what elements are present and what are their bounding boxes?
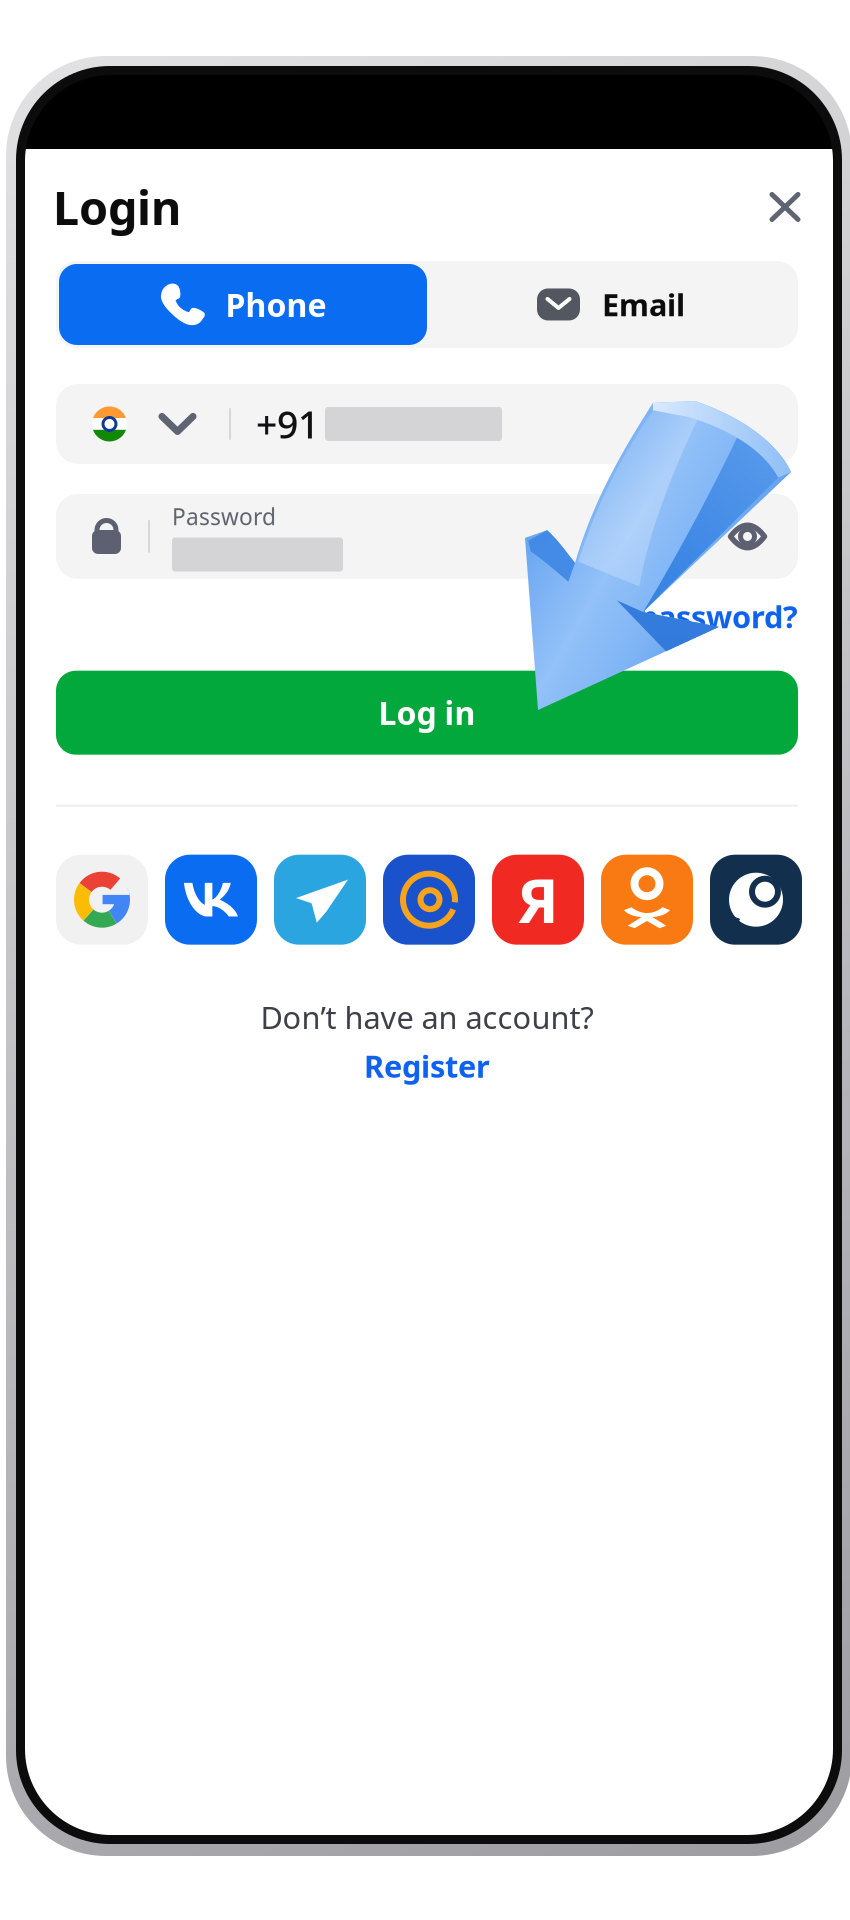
staticText: +91 [256,399,319,449]
button[interactable]: Continue with Steam [710,855,802,945]
staticText: Don’t have an account? [260,997,593,1037]
staticText: Password [172,501,276,531]
staticText: Log in [378,691,475,734]
staticText: Я [517,859,559,940]
staticText: Phone [225,283,326,326]
button[interactable]: Log in [56,671,798,755]
button[interactable]: Continue with Telegram [274,855,366,945]
button[interactable]: Email [427,264,795,345]
button[interactable]: Register [364,1045,490,1086]
button[interactable]: Continue with VK [165,855,257,945]
button[interactable]: Continue with Google [56,855,148,945]
staticText: Forgot password? [531,596,798,637]
button[interactable]: Show password [730,504,798,568]
button[interactable]: Phone [59,264,427,345]
button[interactable]: Continue with Mail.ru [383,855,475,945]
button[interactable]: Continue with Yandex [492,855,584,945]
staticText: Email [602,284,685,325]
button[interactable]: Close [757,179,813,234]
staticText: Register [364,1045,490,1086]
button[interactable]: Select country code [56,384,229,464]
button[interactable]: Forgot password? [531,596,798,637]
button[interactable]: Continue with Odnoklassniki [601,855,693,945]
staticText: Login [53,176,181,238]
